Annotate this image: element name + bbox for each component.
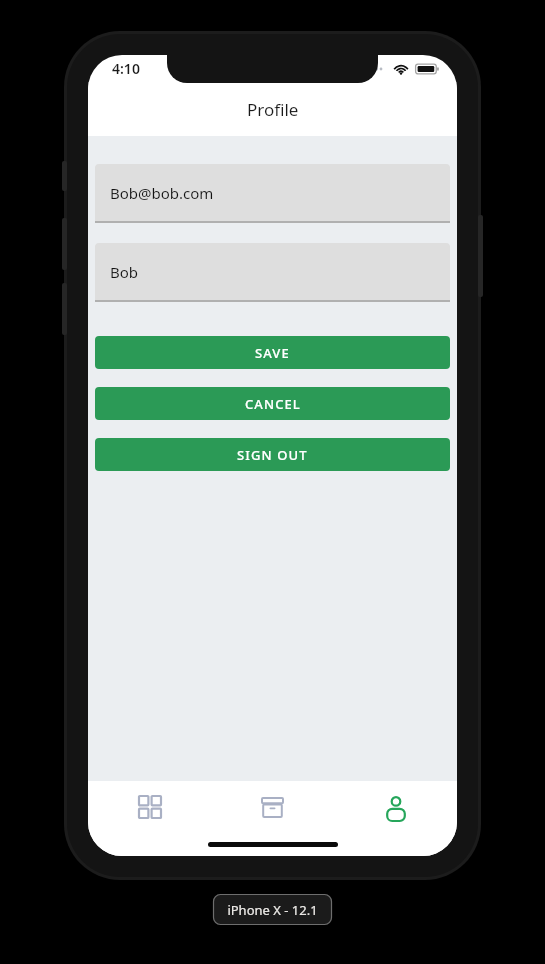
button[interactable]: SAVE	[95, 336, 450, 369]
staticText: SAVE	[255, 344, 290, 362]
button[interactable]: Archive	[211, 781, 334, 833]
staticText: CANCEL	[245, 395, 301, 413]
button[interactable]: Bob@bob.com	[95, 164, 450, 223]
button[interactable]: Bob	[95, 243, 450, 302]
button[interactable]: Profile	[334, 781, 457, 833]
staticText: SIGN OUT	[237, 446, 308, 464]
button[interactable]: CANCEL	[95, 387, 450, 420]
button[interactable]: Dashboard	[88, 781, 211, 833]
staticText: 4:10	[112, 59, 140, 78]
staticText: Profile	[247, 98, 299, 121]
button[interactable]: SIGN OUT	[95, 438, 450, 471]
staticText: iPhone X - 12.1	[227, 901, 318, 919]
staticText: Bob@bob.com	[110, 183, 214, 203]
staticText: Bob	[110, 262, 139, 282]
